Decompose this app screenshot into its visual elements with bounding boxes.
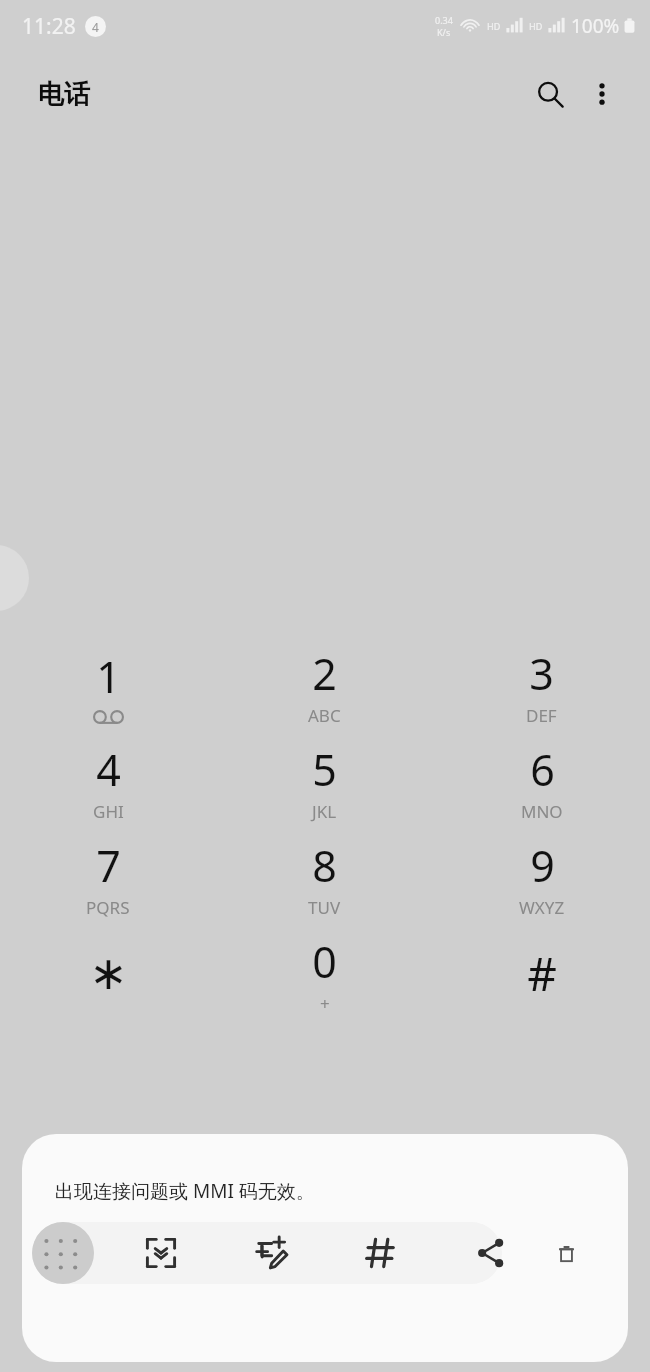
button[interactable]: 6 (433, 737, 650, 825)
button[interactable]: ∗ (0, 929, 216, 1017)
button[interactable]: Share (464, 1226, 518, 1280)
staticText: TUV (308, 896, 341, 919)
button[interactable]: # (433, 929, 650, 1017)
staticText: 9 (530, 836, 555, 895)
staticText: 6 (530, 740, 555, 799)
staticText: 1 (96, 647, 121, 706)
staticText: 3 (529, 644, 554, 703)
button[interactable]: Delete (547, 1234, 585, 1272)
button[interactable]: Search (524, 68, 576, 120)
staticText: 100% (571, 13, 620, 39)
staticText: ABC (308, 704, 341, 727)
button[interactable]: Dial hash (354, 1226, 408, 1280)
staticText: MNO (521, 800, 563, 823)
button[interactable]: 1 (0, 641, 216, 729)
button[interactable]: More options (576, 68, 628, 120)
button[interactable]: Scan (134, 1226, 188, 1280)
staticText: ∗ (89, 946, 128, 1000)
staticText: 2 (312, 644, 337, 703)
staticText: GHI (93, 800, 124, 823)
staticText: HD (487, 20, 501, 32)
button[interactable]: 0 (216, 929, 433, 1017)
staticText: WXYZ (519, 896, 565, 919)
staticText: 8 (312, 836, 337, 895)
staticText: K/s (437, 26, 451, 38)
button[interactable]: 8 (216, 833, 433, 921)
staticText: 0.34 (435, 14, 453, 26)
staticText: 电话 (38, 78, 90, 111)
button[interactable]: 7 (0, 833, 216, 921)
staticText: JKL (312, 800, 337, 823)
staticText: 0 (312, 932, 337, 991)
staticText: 4 (96, 740, 121, 799)
button[interactable]: 5 (216, 737, 433, 825)
staticText: 出现连接问题或 MMI 码无效。 (55, 1178, 315, 1204)
staticText: 5 (312, 740, 337, 799)
button[interactable]: 9 (433, 833, 650, 921)
staticText: + (320, 992, 330, 1015)
button[interactable]: 2 (216, 641, 433, 729)
staticText: 4 (92, 19, 99, 35)
staticText: PQRS (86, 896, 130, 919)
staticText: HD (529, 20, 543, 32)
staticText: 11:28 (22, 12, 76, 41)
button[interactable]: 3 (433, 641, 650, 729)
staticText: 7 (96, 836, 121, 895)
button[interactable]: 4 (0, 737, 216, 825)
staticText: # (527, 942, 557, 1005)
button[interactable]: Keypad (32, 1222, 94, 1284)
staticText: DEF (526, 704, 557, 727)
button[interactable]: Add contact (244, 1226, 298, 1280)
